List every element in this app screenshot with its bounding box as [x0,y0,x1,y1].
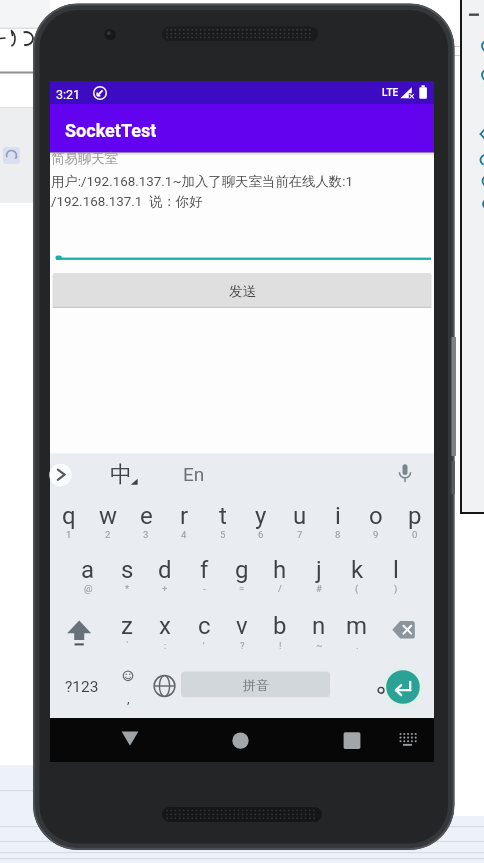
staticText: 9 [373,529,379,540]
staticText: 4 [181,529,187,540]
button[interactable] [280,498,318,552]
staticText: 5 [220,529,226,540]
staticText: m [346,612,368,640]
staticText: 7 [297,529,303,540]
staticText: 3 [143,529,149,540]
button[interactable] [261,552,299,606]
button[interactable] [376,552,414,606]
button[interactable] [338,552,376,606]
staticText: ) [394,583,398,594]
button[interactable] [168,452,214,498]
staticText: 中 [110,460,133,488]
staticText: x [159,612,171,640]
staticText: . [356,640,359,651]
button[interactable] [165,498,203,552]
button[interactable] [127,498,165,552]
button[interactable] [50,660,112,717]
staticText: r [180,502,189,530]
staticText: s [121,556,134,584]
staticText: a [81,556,95,584]
staticText: - [203,583,206,594]
button[interactable] [98,718,162,762]
button[interactable] [400,660,434,717]
button[interactable] [181,660,330,717]
button[interactable] [223,552,261,606]
button[interactable] [338,606,376,660]
staticText: @ [84,583,93,594]
staticText: y [255,502,267,530]
button[interactable] [146,552,184,606]
staticText: o [369,502,383,530]
staticText: n [312,612,326,640]
staticText: q [62,502,76,530]
staticText: h [273,556,287,584]
staticText: k [351,556,364,584]
button[interactable] [184,606,222,660]
button[interactable] [50,498,88,552]
staticText: i [335,502,341,530]
button[interactable] [388,718,434,762]
staticText: 用户:/192.168.137.1~加入了聊天室当前在线人数:1 [51,173,353,190]
staticText: u [293,502,307,530]
button[interactable] [382,452,428,498]
staticText: 1 [66,529,72,540]
staticText: l [393,556,399,584]
staticText: ! [279,640,282,651]
button[interactable] [300,606,338,660]
button[interactable] [53,273,432,308]
button[interactable] [300,552,338,606]
staticText: 6 [258,529,264,540]
staticText: # [316,583,322,594]
staticText: /192.168.137.1 说：你好 [51,193,203,210]
staticText: w [99,502,118,530]
staticText: p [408,502,422,530]
staticText: + [162,583,168,594]
staticText: f [200,556,209,584]
button[interactable] [396,498,434,552]
button[interactable] [100,452,146,498]
button[interactable] [319,498,357,552]
staticText: z [121,612,133,640]
button[interactable] [88,498,126,552]
button[interactable] [50,454,74,491]
button[interactable] [320,718,384,762]
button[interactable] [146,606,184,660]
staticText: t [219,502,227,530]
staticText: c [198,612,211,640]
button[interactable] [223,606,261,660]
button[interactable] [204,498,242,552]
staticText: e [140,502,153,530]
button[interactable] [261,606,299,660]
button[interactable] [50,606,108,660]
staticText: d [158,556,172,584]
button[interactable] [184,552,222,606]
staticText: SocketTest [65,120,157,141]
staticText: g [235,556,249,584]
staticText: ' [203,640,205,651]
button[interactable] [208,718,272,762]
staticText: 简易聊天室 [51,150,118,167]
staticText: = [239,583,245,594]
staticText: 发送 [229,283,256,300]
staticText: 8 [335,529,341,540]
button[interactable] [147,660,182,717]
staticText: 3:21 [56,87,81,102]
staticText: j [316,556,322,584]
staticText: b [273,612,287,640]
button[interactable] [357,498,395,552]
staticText: * [125,583,130,594]
button[interactable] [69,552,107,606]
button[interactable] [362,660,400,717]
staticText: , [127,691,130,706]
button[interactable] [108,606,146,660]
staticText: ` [126,640,129,651]
button[interactable] [112,660,147,717]
staticText: ? [240,640,245,651]
button[interactable] [376,606,434,660]
staticText: v [236,612,248,640]
button[interactable] [52,220,432,262]
staticText: / [278,583,282,594]
button[interactable] [242,498,280,552]
button[interactable] [108,552,146,606]
staticText: 0 [412,529,418,540]
